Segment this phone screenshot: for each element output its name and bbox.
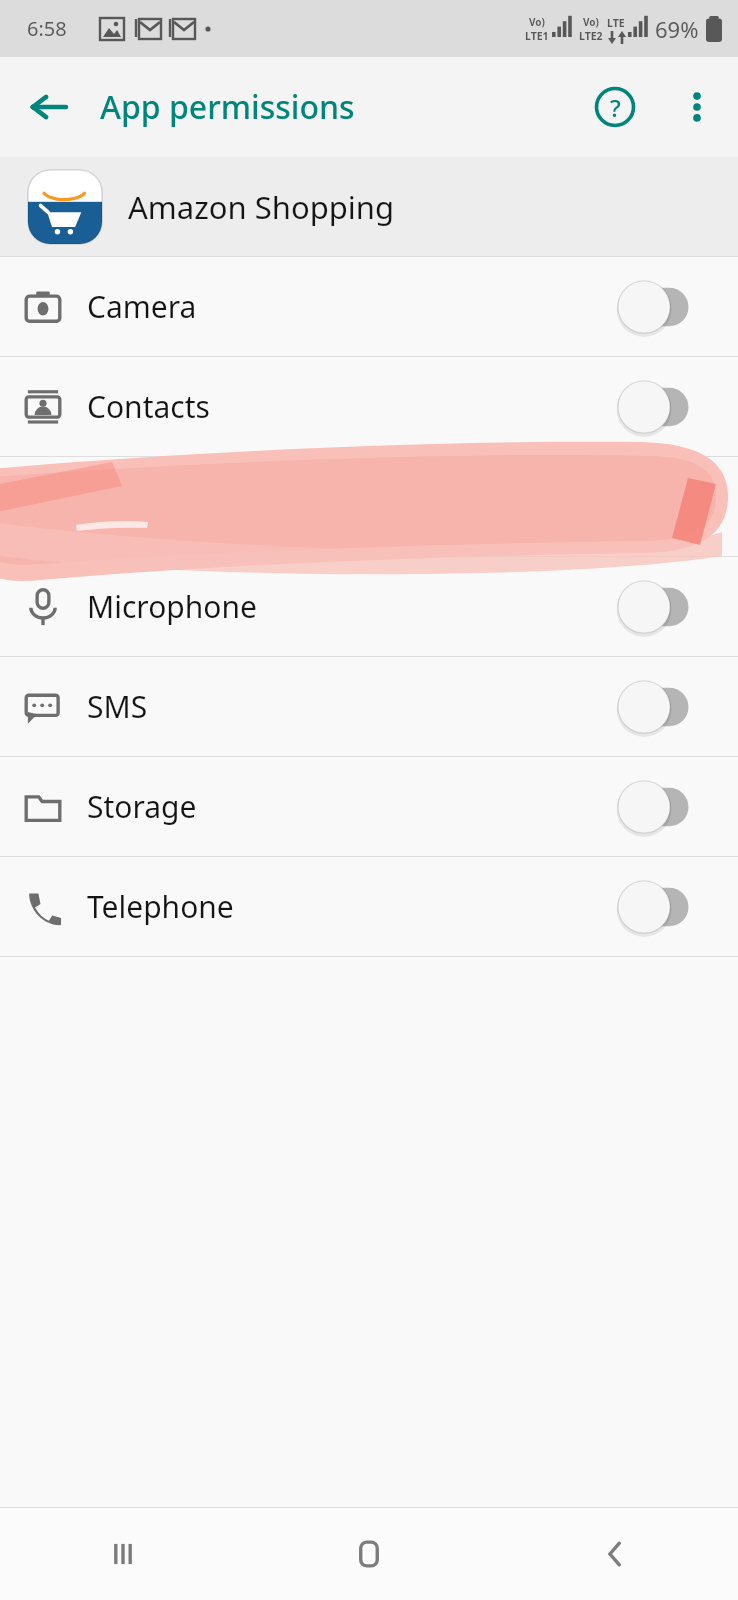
- button[interactable]: Storage permission toggle, off: [612, 778, 702, 836]
- staticText: Storage: [87, 786, 197, 827]
- button[interactable]: Location permission toggle, off: [612, 478, 702, 536]
- staticText: LTE: [607, 16, 625, 30]
- button[interactable]: Recent apps: [0, 1508, 246, 1600]
- button[interactable]: Contacts: [0, 357, 738, 456]
- staticText: Vo): [529, 15, 545, 29]
- staticText: Camera: [87, 286, 197, 327]
- button[interactable]: Telephone: [0, 857, 738, 956]
- button[interactable]: Contacts permission toggle, off: [612, 378, 702, 436]
- staticText: ?: [610, 91, 621, 124]
- button[interactable]: Storage: [0, 757, 738, 856]
- staticText: SMS: [87, 686, 148, 727]
- button[interactable]: Telephone permission toggle, off: [612, 878, 702, 936]
- button[interactable]: Navigate up: [16, 74, 82, 140]
- button[interactable]: Location: [0, 457, 738, 556]
- button[interactable]: SMS: [0, 657, 738, 756]
- button[interactable]: Help: [582, 74, 648, 140]
- staticText: 6:58: [27, 15, 67, 42]
- button[interactable]: Home: [246, 1508, 492, 1600]
- staticText: Contacts: [87, 386, 210, 427]
- staticText: Location: [87, 486, 208, 527]
- button[interactable]: More options: [664, 74, 730, 140]
- staticText: Amazon Shopping: [128, 186, 395, 228]
- staticText: Microphone: [87, 586, 257, 627]
- staticText: 69%: [655, 14, 699, 44]
- button[interactable]: Microphone permission toggle, off: [612, 578, 702, 636]
- staticText: App permissions: [100, 85, 355, 129]
- button[interactable]: Camera permission toggle, off: [612, 278, 702, 336]
- staticText: LTE1: [525, 29, 549, 43]
- button[interactable]: Microphone: [0, 557, 738, 656]
- button[interactable]: Amazon Shopping: [0, 157, 738, 256]
- staticText: Telephone: [87, 886, 234, 927]
- staticText: LTE2: [579, 29, 603, 43]
- button[interactable]: SMS permission toggle, off: [612, 678, 702, 736]
- staticText: Vo): [583, 15, 599, 29]
- button[interactable]: Back: [492, 1508, 738, 1600]
- button[interactable]: Camera: [0, 257, 738, 356]
